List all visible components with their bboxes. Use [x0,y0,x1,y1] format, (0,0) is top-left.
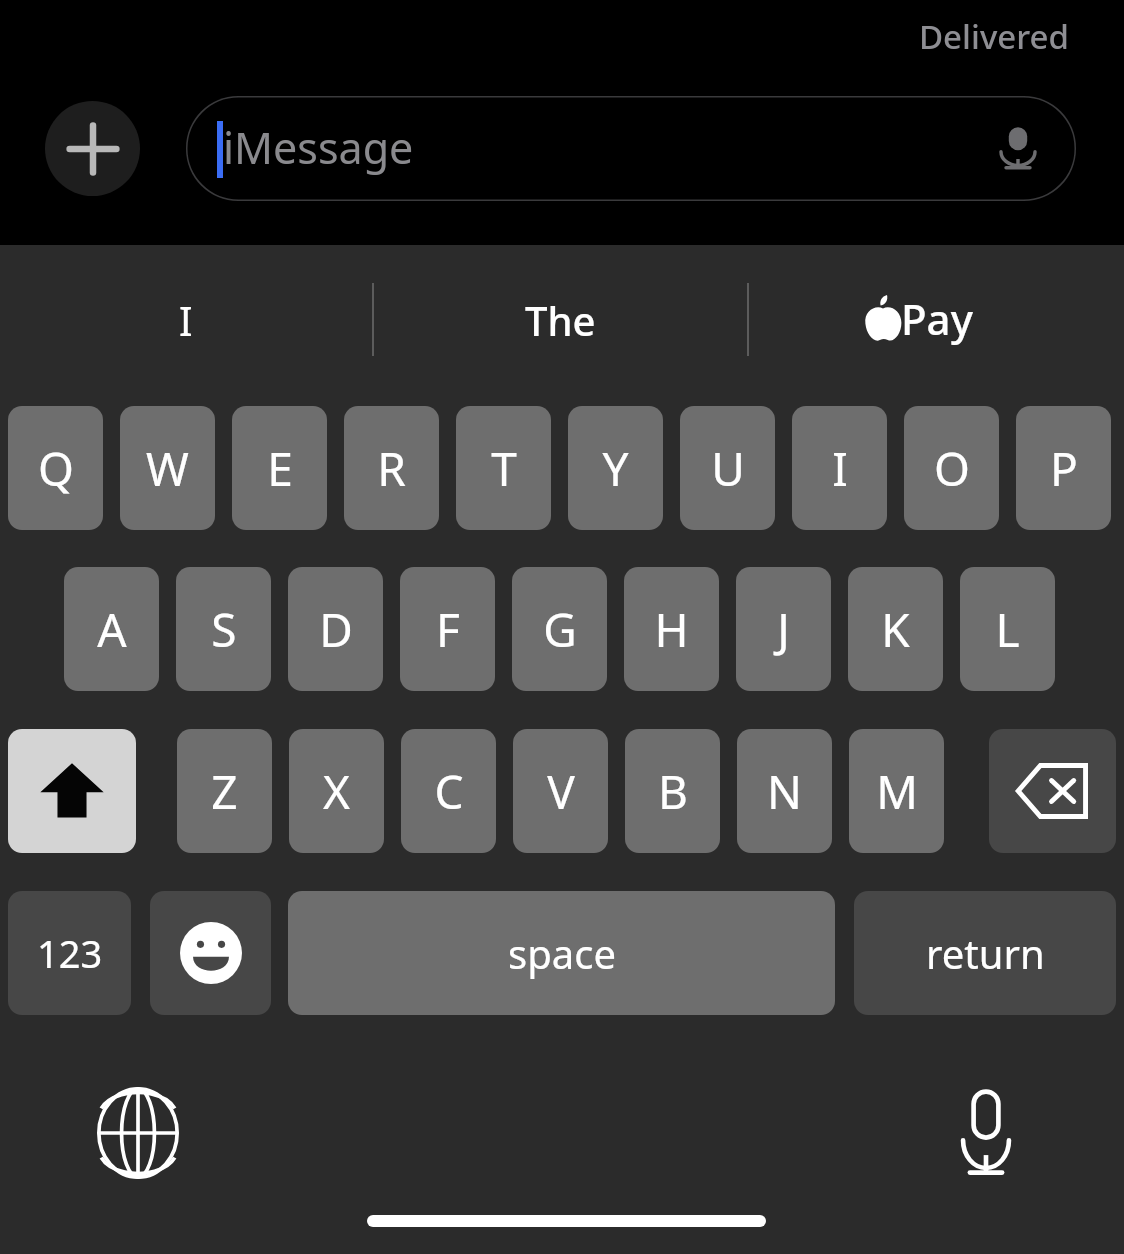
staticText: space [508,926,616,980]
staticText: Z [211,760,238,823]
button[interactable]: Y [568,406,663,530]
button[interactable]: I [792,406,887,530]
button[interactable]: R [344,406,439,530]
button[interactable]: O [904,406,999,530]
button[interactable]: L [960,567,1055,691]
button[interactable]: S [176,567,271,691]
button[interactable]: M [849,729,944,853]
staticText: Q [38,437,74,500]
staticText: N [767,760,802,823]
button[interactable]: U [680,406,775,530]
staticText: I [832,437,848,500]
staticText: A [97,598,127,661]
staticText: Pay [901,290,973,347]
button[interactable]: K [848,567,943,691]
button[interactable]: iMessage [186,96,1076,201]
button[interactable]: 123 [8,891,131,1015]
button[interactable]: P [1016,406,1111,530]
button[interactable]: H [624,567,719,691]
button[interactable]: T [456,406,551,530]
button[interactable]: D [288,567,383,691]
staticText: H [654,598,689,661]
staticText: Delivered [919,14,1069,59]
button[interactable]: return [854,891,1116,1015]
staticText: 123 [37,927,103,979]
button[interactable]: B [625,729,720,853]
button[interactable]: space [288,891,835,1015]
button[interactable]: C [401,729,496,853]
staticText: R [377,437,406,500]
button[interactable]: Emoji [150,891,271,1015]
staticText: U [711,437,745,500]
staticText: W [146,437,189,500]
staticText: Y [602,437,629,500]
button[interactable]: E [232,406,327,530]
button[interactable]: Next keyboard [92,1087,184,1179]
button[interactable]: A [64,567,159,691]
button[interactable]: W [120,406,215,530]
button[interactable]: N [737,729,832,853]
button[interactable]: V [513,729,608,853]
button[interactable]: Backspace [989,729,1116,853]
staticText: V [547,760,575,823]
button[interactable]: G [512,567,607,691]
staticText: D [319,598,353,661]
staticText: G [543,598,577,661]
staticText: L [995,598,1020,661]
staticText: P [1050,437,1078,500]
staticText: C [434,760,464,823]
button[interactable]: Shift [8,729,136,853]
staticText: T [491,437,517,500]
staticText: X [323,760,350,823]
button[interactable]: The [374,260,747,380]
button[interactable]: Pay [749,260,1124,380]
staticText: F [436,598,460,661]
staticText: J [777,598,790,661]
staticText: iMessage [223,118,414,177]
staticText: I [179,293,193,347]
button[interactable]: I [0,260,372,380]
staticText: E [267,437,293,500]
button[interactable]: Dictation [940,1087,1032,1179]
button[interactable]: F [400,567,495,691]
staticText: S [211,598,237,661]
staticText: O [934,437,970,500]
button[interactable]: Z [177,729,272,853]
button[interactable]: Add attachment [45,101,140,196]
staticText: M [876,760,918,823]
staticText: B [658,760,688,823]
staticText: The [525,293,596,347]
button[interactable]: J [736,567,831,691]
button[interactable]: X [289,729,384,853]
staticText: K [881,598,910,661]
button[interactable]: Q [8,406,103,530]
staticText: return [926,926,1045,980]
button[interactable]: Dictate [986,116,1050,180]
